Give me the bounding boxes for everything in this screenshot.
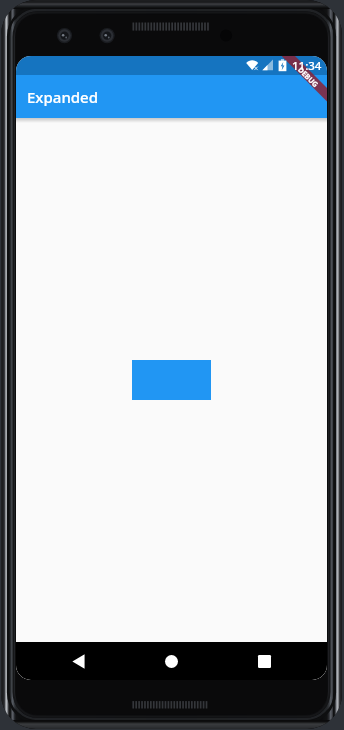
staticText: DEBUG — [296, 65, 321, 89]
staticText: 11:34 — [292, 58, 322, 74]
button[interactable]: Back — [58, 642, 100, 680]
button[interactable]: Home — [150, 642, 192, 680]
button[interactable]: Recent apps — [243, 642, 285, 680]
staticText: Expanded — [27, 87, 98, 107]
